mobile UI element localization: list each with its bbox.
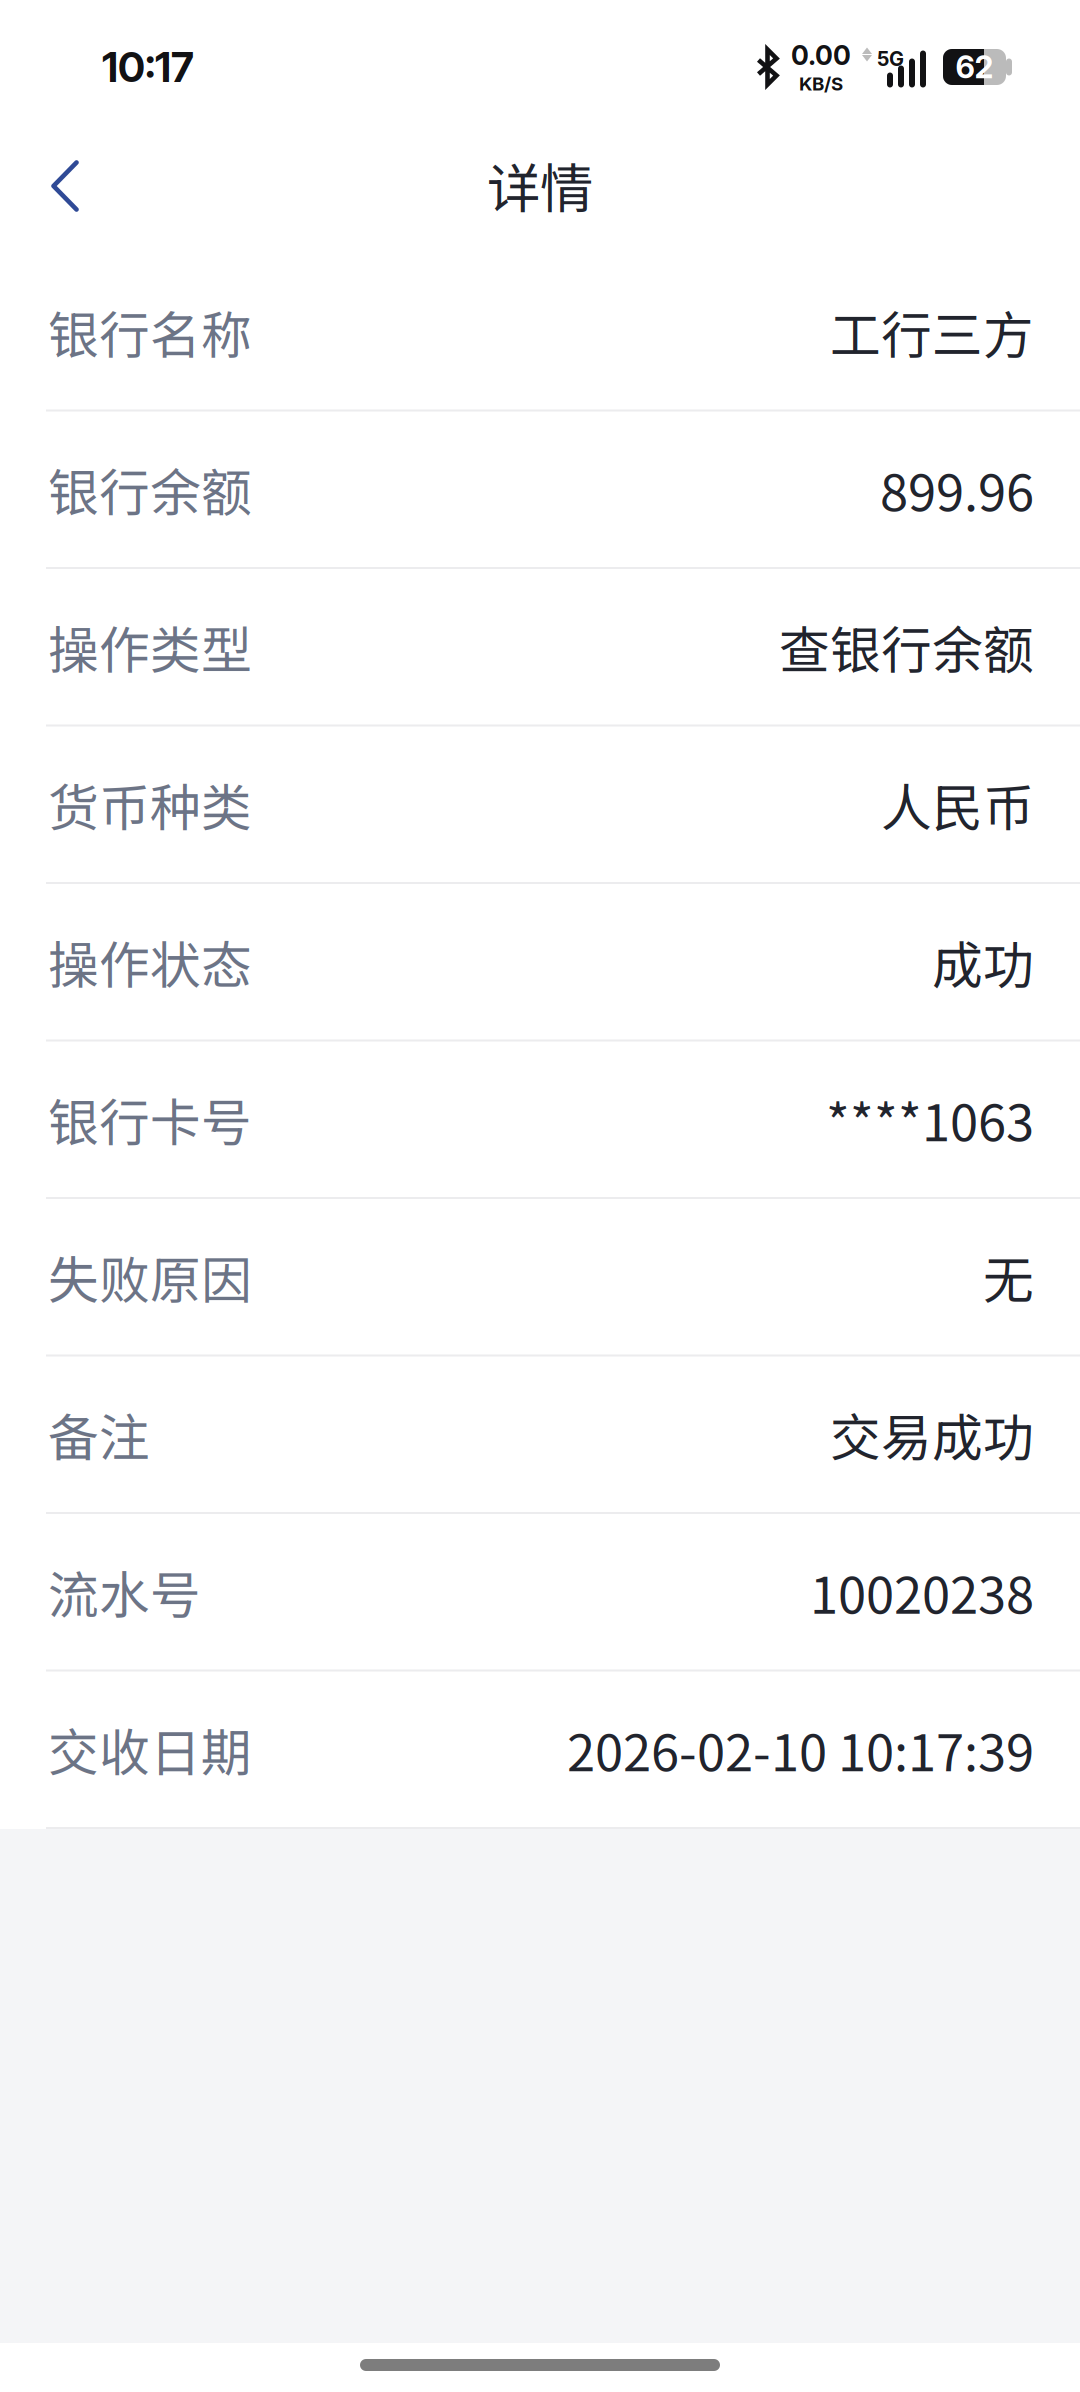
staticText: 交易成功	[830, 1398, 1034, 1471]
staticText: 失败原因	[48, 1240, 252, 1313]
staticText: 操作类型	[48, 610, 252, 683]
staticText: 货币种类	[48, 768, 252, 841]
staticText: ****1063	[826, 1083, 1034, 1156]
staticText: 详情	[487, 146, 593, 224]
staticText: 交收日期	[48, 1713, 252, 1786]
staticText: 10:17	[102, 42, 194, 92]
staticText: 2026-02-10 10:17:39	[567, 1713, 1034, 1786]
staticText: 899.96	[880, 453, 1034, 526]
staticText: 5G	[877, 46, 904, 71]
staticText: 查银行余额	[779, 610, 1034, 683]
staticText: 成功	[932, 925, 1034, 998]
staticText: 人民币	[881, 768, 1034, 841]
staticText: 银行名称	[48, 295, 252, 368]
staticText: 工行三方	[830, 295, 1034, 368]
staticText: 银行卡号	[48, 1083, 252, 1156]
staticText: 备注	[48, 1398, 150, 1471]
staticText: KB/S	[799, 72, 843, 95]
staticText: 62	[955, 48, 993, 85]
staticText: 10020238	[810, 1555, 1034, 1628]
button[interactable]: Back	[19, 140, 111, 232]
staticText: 0.00	[791, 39, 851, 71]
staticText: 流水号	[48, 1555, 201, 1628]
staticText: 操作状态	[48, 925, 252, 998]
staticText: 银行余额	[48, 453, 252, 526]
staticText: 无	[983, 1240, 1034, 1313]
